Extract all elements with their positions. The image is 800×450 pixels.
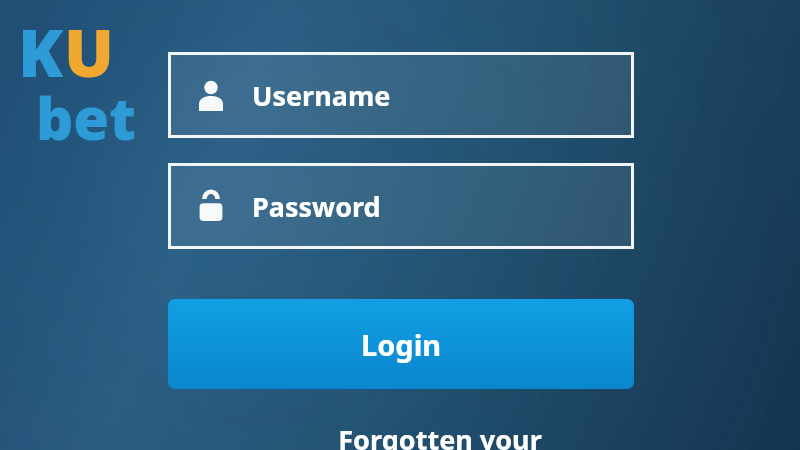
staticText: U [64,6,114,96]
staticText: Login [361,325,442,364]
button[interactable]: Login [168,299,634,389]
staticText: Password [252,188,381,225]
staticText: Username [252,77,391,114]
button[interactable]: KUbet logo [14,6,122,175]
button[interactable]: Forgotten your Password? [168,421,634,450]
button[interactable]: Password [168,163,634,249]
staticText: K [18,6,64,96]
button[interactable]: Username [168,52,634,138]
staticText: bet [36,78,136,157]
staticText: Forgotten your Password? [268,421,612,450]
